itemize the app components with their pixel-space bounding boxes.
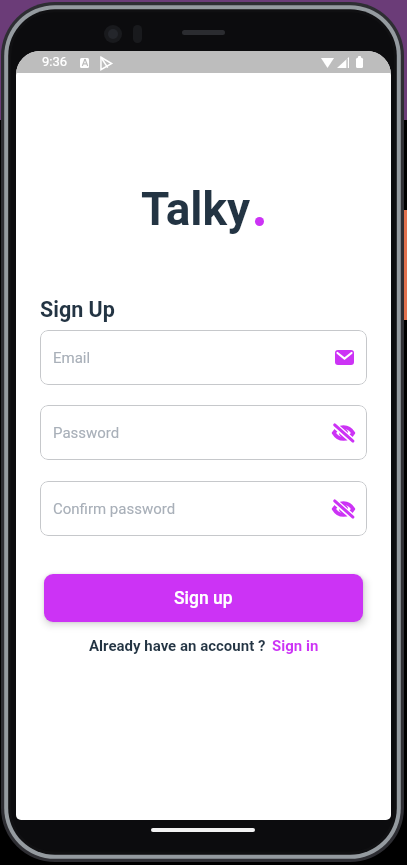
staticText: Sign up bbox=[174, 588, 233, 609]
staticText: Already have an account ? bbox=[89, 637, 266, 655]
button[interactable]: Email bbox=[40, 330, 367, 385]
button[interactable]: Password bbox=[40, 405, 367, 460]
staticText: Password bbox=[53, 424, 120, 442]
staticText: Sign Up bbox=[40, 297, 115, 322]
other: Show password bbox=[333, 424, 354, 442]
other: Email bbox=[335, 350, 354, 365]
button[interactable]: Confirm password bbox=[40, 481, 367, 536]
other: Show password bbox=[333, 500, 354, 518]
staticText: Email bbox=[53, 349, 91, 367]
staticText: 9:36 bbox=[42, 54, 68, 69]
staticText: Sign in bbox=[272, 637, 319, 655]
button[interactable]: Sign up bbox=[44, 574, 363, 622]
staticText: Talky bbox=[141, 182, 251, 236]
button[interactable]: Sign in bbox=[272, 637, 319, 655]
staticText: Confirm password bbox=[53, 500, 176, 518]
